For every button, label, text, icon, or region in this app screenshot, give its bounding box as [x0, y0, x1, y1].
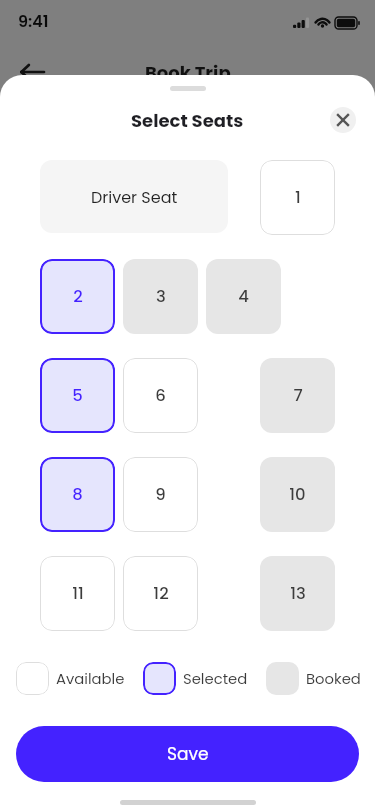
staticText: Save [167, 742, 209, 766]
staticText: 8 [72, 483, 83, 506]
staticText: Selected [183, 668, 248, 689]
staticText: 13 [290, 582, 306, 605]
staticText: 1 [295, 186, 301, 209]
button[interactable]: Back [12, 52, 52, 92]
staticText: 10 [289, 483, 306, 506]
staticText: 3 [156, 285, 166, 308]
button[interactable]: 9 [123, 457, 198, 532]
staticText: 2 [73, 285, 83, 308]
button[interactable]: 2 [40, 259, 115, 334]
button[interactable]: 11 [40, 556, 115, 631]
button[interactable]: 12 [123, 556, 198, 631]
staticText: 9 [155, 483, 166, 506]
button[interactable]: 6 [123, 358, 198, 433]
button[interactable]: Save [16, 726, 359, 782]
button[interactable]: 4 [206, 259, 281, 334]
button[interactable]: 13 [260, 556, 335, 631]
staticText: 7 [293, 384, 303, 407]
button[interactable]: 3 [123, 259, 198, 334]
staticText: 11 [72, 582, 84, 605]
button[interactable]: 1 [260, 160, 335, 235]
button[interactable]: 8 [40, 457, 115, 532]
button[interactable]: Booked [266, 662, 361, 695]
button[interactable]: 10 [260, 457, 335, 532]
staticText: 9:41 [18, 10, 49, 32]
button[interactable]: Selected [143, 662, 248, 695]
staticText: Driver Seat [91, 186, 178, 208]
button[interactable]: Close [330, 107, 356, 133]
button[interactable]: Available [16, 662, 125, 695]
staticText: Available [56, 668, 125, 689]
staticText: Book Trip [145, 60, 231, 85]
staticText: Booked [306, 668, 361, 689]
staticText: 4 [238, 285, 249, 308]
staticText: Select Seats [131, 108, 244, 133]
staticText: 12 [153, 582, 169, 605]
staticText: 6 [155, 384, 166, 407]
staticText: 5 [72, 384, 83, 407]
button[interactable]: 5 [40, 358, 115, 433]
button[interactable]: 7 [260, 358, 335, 433]
button[interactable]: Driver Seat [40, 160, 228, 233]
